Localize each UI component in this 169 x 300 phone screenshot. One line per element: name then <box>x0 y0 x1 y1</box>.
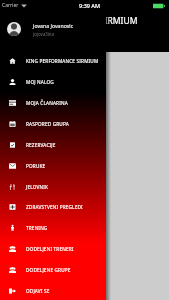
staticText: Carrier <box>2 2 19 9</box>
other: Reservations <box>9 142 16 148</box>
staticText: RASPORED GRUPA <box>26 121 69 127</box>
staticText: Jovana Jovanovic <box>33 22 74 29</box>
button[interactable]: Log out <box>0 280 106 300</box>
button[interactable]: Health checks <box>0 196 106 217</box>
staticText: MOJ NALOG <box>26 79 54 85</box>
button[interactable]: Group schedule <box>0 113 106 134</box>
other: Training <box>9 225 16 231</box>
button[interactable]: Reservations <box>0 134 106 155</box>
other: Health checks <box>9 204 16 210</box>
other: Home <box>9 58 16 64</box>
other: Assigned groups <box>9 267 16 273</box>
other: My account <box>9 79 16 85</box>
button[interactable]: Training <box>0 217 106 238</box>
staticText: JELOVNIK <box>26 184 49 190</box>
staticText: ZDRAVSTVENI PREGLEDI <box>26 204 83 210</box>
button[interactable]: Messages <box>0 155 106 176</box>
staticText: TRENING <box>26 225 48 231</box>
button[interactable]: Assigned trainers <box>0 238 106 259</box>
other: Assigned trainers <box>9 246 16 252</box>
staticText: REZERVACIJE <box>26 142 56 148</box>
staticText: DODELJENI TRENERI <box>26 246 74 252</box>
staticText: MOJA ČLANARINA <box>26 100 68 106</box>
staticText: SIRMIUM <box>100 15 138 27</box>
button[interactable]: My membership <box>0 92 106 113</box>
other: Group schedule <box>9 121 16 127</box>
staticText: 9:39 AM <box>79 2 101 9</box>
staticText: jojova3ina <box>33 31 55 37</box>
button[interactable]: My account <box>0 71 106 92</box>
staticText: PORUKE <box>26 163 46 169</box>
other: My membership <box>9 100 16 106</box>
other: Menu <box>9 184 16 190</box>
other: Log out <box>9 288 16 294</box>
button[interactable]: Menu <box>0 176 106 197</box>
button[interactable]: Home <box>0 50 106 71</box>
button[interactable]: Jovana Jovanovic <box>7 20 106 38</box>
staticText: ODJAVI SE <box>26 288 50 294</box>
other: Messages <box>9 163 16 169</box>
staticText: DODELJENE GRUPE <box>26 267 71 273</box>
button[interactable]: Assigned groups <box>0 259 106 280</box>
staticText: KING PERFORMANCE SIRMIUM <box>26 58 99 64</box>
